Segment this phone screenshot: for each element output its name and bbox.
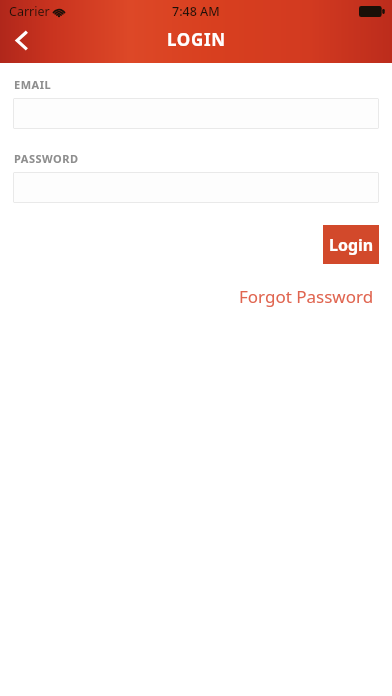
button[interactable]: Login: [323, 225, 379, 264]
staticText: PASSWORD: [14, 151, 79, 166]
staticText: EMAIL: [14, 77, 52, 92]
button[interactable]: Forgot Password: [235, 282, 378, 311]
button[interactable]: Back: [0, 19, 42, 61]
staticText: LOGIN: [167, 28, 226, 51]
staticText: Login: [329, 234, 374, 256]
staticText: 7:48 AM: [172, 3, 220, 20]
staticText: Carrier: [9, 3, 50, 20]
button[interactable]: [13, 98, 379, 129]
button[interactable]: [13, 172, 379, 203]
staticText: Forgot Password: [239, 285, 374, 308]
